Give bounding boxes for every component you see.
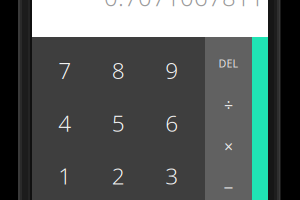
staticText: 5 — [112, 108, 125, 138]
button[interactable]: 8 — [91, 44, 145, 97]
staticText: 9 — [165, 55, 178, 85]
staticText: 8 — [112, 55, 125, 85]
staticText: DEL — [218, 56, 238, 70]
staticText: 1 — [58, 161, 71, 191]
button[interactable]: 9 — [145, 44, 198, 97]
button[interactable]: 6 — [145, 97, 198, 149]
staticText: 0.7071067811 — [104, 0, 264, 13]
staticText: 7 — [58, 55, 71, 85]
staticText: × — [224, 136, 233, 157]
staticText: 4 — [58, 108, 71, 138]
button[interactable]: 1 — [38, 149, 91, 200]
button[interactable]: 3 — [145, 149, 198, 200]
button[interactable]: − — [205, 167, 252, 200]
button[interactable]: DEL — [205, 43, 252, 84]
button[interactable]: 2 — [91, 149, 145, 200]
button[interactable]: ÷ — [205, 84, 252, 125]
staticText: ÷ — [224, 94, 233, 115]
button[interactable]: 4 — [38, 97, 91, 149]
button[interactable]: 7 — [38, 44, 91, 97]
button[interactable]: 5 — [91, 97, 145, 149]
staticText: 6 — [165, 108, 178, 138]
button[interactable]: × — [205, 125, 252, 167]
staticText: 3 — [165, 161, 178, 191]
staticText: − — [223, 176, 233, 199]
staticText: 2 — [112, 161, 125, 191]
